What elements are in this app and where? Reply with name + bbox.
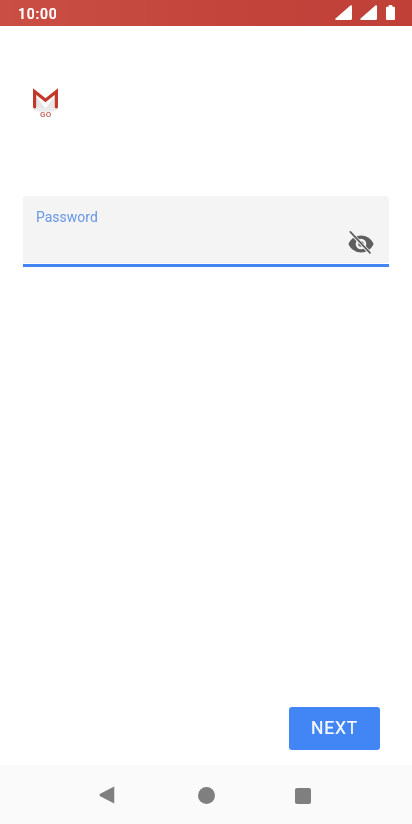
button[interactable]: NEXT — [289, 707, 380, 750]
staticText: 10:00 — [18, 6, 58, 22]
button[interactable]: Home — [176, 765, 236, 824]
staticText: NEXT — [311, 718, 359, 739]
button[interactable]: Show password — [341, 227, 381, 261]
button[interactable]: Password — [23, 196, 389, 263]
button[interactable]: Recent apps — [273, 765, 333, 824]
button[interactable]: Back — [76, 765, 136, 824]
staticText: GO — [40, 110, 52, 119]
staticText: Password — [36, 209, 98, 225]
